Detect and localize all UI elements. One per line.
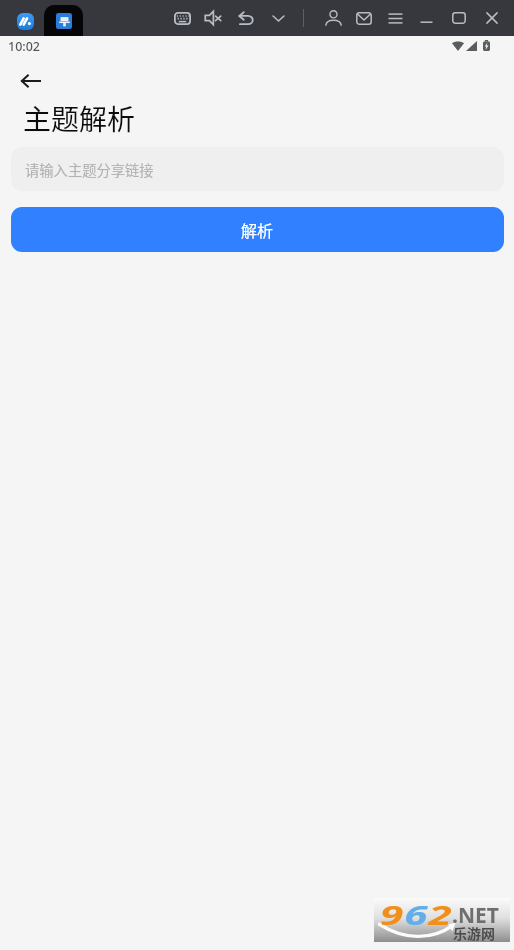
button[interactable]: Mail <box>352 6 376 30</box>
button[interactable]: Account <box>321 6 345 30</box>
button[interactable]: App tab <box>6 0 45 36</box>
button[interactable]: Menu <box>383 6 407 30</box>
staticText: 主题解析 <box>23 98 136 139</box>
staticText: 解析 <box>241 218 274 241</box>
staticText: 请输入主题分享链接 <box>25 159 154 180</box>
button[interactable]: 解析 <box>11 207 504 252</box>
button[interactable]: Theme tab <box>44 5 83 36</box>
button[interactable]: Minimize <box>414 6 438 30</box>
button[interactable]: Mute <box>201 6 225 30</box>
button[interactable]: Back <box>8 58 54 104</box>
button[interactable]: Maximize <box>447 6 471 30</box>
button[interactable]: Undo <box>234 6 258 30</box>
button[interactable]: More options <box>266 6 290 30</box>
staticText: 乐游网 <box>453 923 495 943</box>
staticText: 2 <box>429 897 453 932</box>
staticText: 9 <box>380 897 404 932</box>
button[interactable]: Close <box>480 6 504 30</box>
staticText: 10:02 <box>8 38 41 55</box>
staticText: 6 <box>404 897 429 932</box>
button[interactable]: Show keyboard <box>170 6 194 30</box>
button[interactable]: 请输入主题分享链接 <box>11 147 504 191</box>
staticText: .NET <box>452 901 499 930</box>
